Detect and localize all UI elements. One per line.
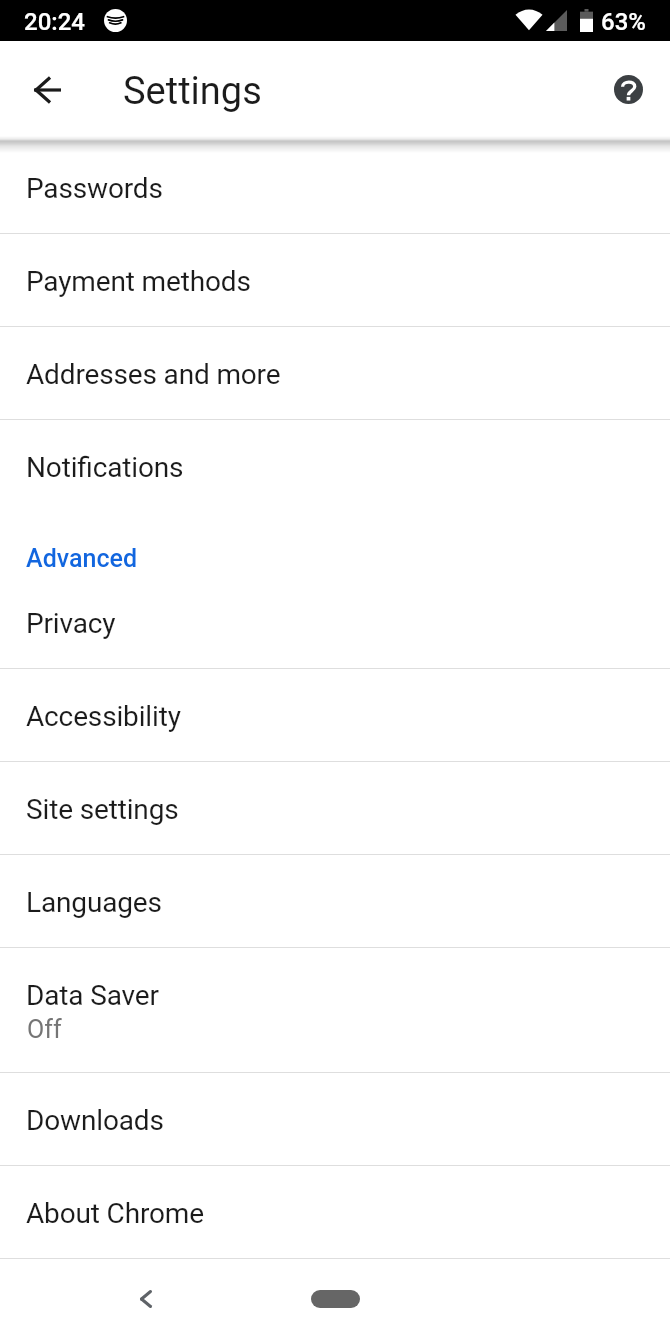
staticText: Addresses and more [26, 358, 281, 391]
button[interactable]: Downloads [0, 1073, 670, 1165]
staticText: Payment methods [26, 265, 251, 298]
staticText: Settings [123, 69, 262, 114]
button[interactable]: Site settings [0, 762, 670, 854]
staticText: 63% [601, 8, 646, 36]
button[interactable]: Home [311, 1290, 360, 1308]
button[interactable]: Accessibility [0, 669, 670, 761]
button[interactable]: Back [22, 64, 74, 116]
button[interactable]: Passwords [0, 141, 670, 233]
button[interactable]: About Chrome [0, 1166, 670, 1258]
staticText: Data Saver [26, 979, 159, 1012]
staticText: Accessibility [26, 700, 181, 733]
staticText: Notifications [26, 451, 184, 484]
button[interactable]: Notifications [0, 420, 670, 512]
button[interactable]: Help [603, 63, 655, 115]
button[interactable]: Data Saver [0, 948, 670, 1072]
button[interactable]: Languages [0, 855, 670, 947]
staticText: Off [27, 1015, 62, 1044]
staticText: Passwords [26, 172, 163, 205]
button[interactable]: Addresses and more [0, 327, 670, 419]
staticText: Site settings [26, 793, 179, 826]
button[interactable]: Privacy [0, 576, 670, 668]
staticText: About Chrome [26, 1197, 204, 1230]
staticText: Downloads [26, 1104, 164, 1137]
staticText: Advanced [26, 544, 138, 573]
button[interactable]: Payment methods [0, 234, 670, 326]
button[interactable]: Back [120, 1273, 172, 1325]
staticText: 20:24 [24, 8, 85, 36]
staticText: Languages [26, 886, 162, 919]
staticText: Privacy [26, 607, 116, 640]
